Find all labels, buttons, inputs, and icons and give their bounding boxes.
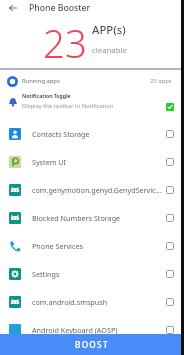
staticText: com.genymotion.genyd.GenydService...	[32, 185, 163, 195]
button[interactable]: Select Phone Services	[166, 242, 174, 250]
button[interactable]: Select Android Keyboard (AOSP)	[166, 326, 174, 334]
staticText: com.android.smspush	[32, 297, 163, 307]
staticText: Display the toolbar in Notification	[22, 102, 114, 110]
button[interactable]: Select System UI	[166, 158, 174, 166]
staticText: Notification Toggle	[22, 93, 71, 100]
staticText: APP(s)	[92, 22, 126, 37]
button[interactable]: Back	[6, 1, 20, 15]
staticText: Phone Services	[32, 241, 163, 251]
button[interactable]: Notification toggle enabled	[166, 103, 174, 111]
button[interactable]: Notification Toggle	[0, 92, 184, 120]
button[interactable]: Select com.android.smspush	[166, 298, 174, 306]
button[interactable]: Contacts Storage	[0, 120, 184, 148]
staticText: Settings	[32, 269, 163, 279]
button[interactable]: com.genymotion.genyd.GenydService...	[0, 176, 184, 204]
button[interactable]: Blocked Numbers Storage	[0, 204, 184, 232]
staticText: Phone Booster	[29, 2, 91, 14]
button[interactable]: Select Blocked Numbers Storage	[166, 214, 174, 222]
staticText: BOOST	[75, 339, 109, 350]
button[interactable]: BOOST	[0, 334, 184, 355]
button[interactable]: System UI	[0, 148, 184, 176]
button[interactable]: com.android.smspush	[0, 288, 184, 316]
button[interactable]: Running apps	[0, 70, 184, 92]
staticText: System UI	[32, 157, 163, 167]
staticText: cleanable	[92, 45, 127, 56]
staticText: Android Keyboard (AOSP)	[32, 325, 163, 335]
staticText: Running apps	[22, 77, 60, 85]
button[interactable]: Select Settings	[166, 270, 174, 278]
staticText: 23 apps	[150, 77, 172, 85]
button[interactable]: Settings	[0, 260, 184, 288]
staticText: Contacts Storage	[32, 129, 163, 139]
staticText: Blocked Numbers Storage	[32, 213, 163, 223]
button[interactable]: Select Contacts Storage	[166, 130, 174, 138]
button[interactable]: Select com.genymotion.genyd.GenydService…	[166, 186, 174, 194]
button[interactable]: Android Keyboard (AOSP)	[0, 316, 184, 344]
button[interactable]: Phone Services	[0, 232, 184, 260]
staticText: 23	[43, 17, 87, 69]
